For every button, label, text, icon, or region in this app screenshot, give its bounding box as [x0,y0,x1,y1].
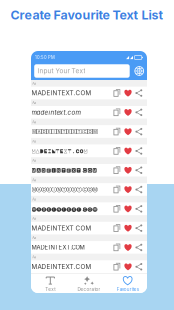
staticText: Aa [32,101,36,105]
button[interactable]: Copy [111,223,122,234]
staticText: Favourites [117,286,139,292]
staticText: Aa [32,216,36,221]
staticText: Decorator [77,286,100,292]
button[interactable]: Favourite [122,242,133,253]
staticText: Aa [32,158,36,163]
staticText: Aa [32,139,36,143]
button[interactable]: Share [133,223,144,234]
button[interactable]: Favourite [122,126,133,137]
button[interactable]: Favourite [122,145,133,156]
button[interactable]: Copy [111,184,122,195]
button[interactable]: Favourite [122,165,133,176]
button[interactable]: Decorator [70,275,108,293]
button[interactable]: Favourite [122,184,133,195]
button[interactable]: Share [133,87,144,98]
button[interactable]: Copy [111,126,122,137]
button[interactable]: Copy [111,165,122,176]
staticText: Aa [32,236,36,240]
button[interactable]: Copy [111,145,122,156]
staticText: Text [45,286,55,292]
staticText: MADEINTEXT COM [31,224,91,232]
staticText: MADEINTEXT.COM [31,244,84,251]
button[interactable]: Share [133,203,144,214]
staticText: Aa [32,120,36,124]
staticText: ⓂⒶⒹⒺⒾⓃⓉⒺⓍⓉ.ⒸⓄⓂ [31,187,97,192]
staticText: 🅜🅐🅓🅔🅘🅝🅣🅔🅧🅣.🅒🅞🅜 [31,206,97,212]
button[interactable]: Favourite [122,261,133,272]
button[interactable]: Favourite [122,223,133,234]
button[interactable]: Copy [111,261,122,272]
button[interactable]: Favourite [122,107,133,118]
button[interactable]: Share [133,242,144,253]
button[interactable]: Copy [111,203,122,214]
button[interactable]: Share [133,261,144,272]
staticText: Aa [32,255,36,259]
button[interactable]: Share [133,145,144,156]
staticText: Aa [32,197,36,201]
staticText: 🄼🄰🄳🄴🄸🄽🅃🄴🅇🅃.🄲🄾🄼 [31,129,97,134]
button[interactable]: Favourite [122,203,133,214]
staticText: madeintext.com [31,109,80,116]
button[interactable]: Text [31,275,70,293]
button[interactable]: Share [133,165,144,176]
button[interactable]: Share [133,126,144,137]
button[interactable]: Share [133,107,144,118]
staticText: MADEINTEXT.COM [31,263,91,271]
button[interactable]: Copy [111,87,122,98]
staticText: Aa [32,81,36,85]
staticText: 10:50 PM [35,55,55,60]
button[interactable]: Copy [111,107,122,118]
button[interactable]: Share [133,184,144,195]
staticText: Aa [32,178,36,182]
staticText: Create Favourite Text List [10,7,163,22]
button[interactable]: Favourites [108,275,147,293]
button[interactable]: Copy [111,242,122,253]
button[interactable]: Favourite [122,87,133,98]
button[interactable]: Change language [133,64,145,78]
staticText: Input Your Text [37,67,85,75]
staticText: MADEINTEXT.COM [31,148,87,154]
staticText: MADEINTEXT.COM [31,89,91,97]
staticText: 🅼🅰🅳🅴🅸🅽🆃🅴🆇🆃.🅲🅾🅼 [31,167,97,173]
